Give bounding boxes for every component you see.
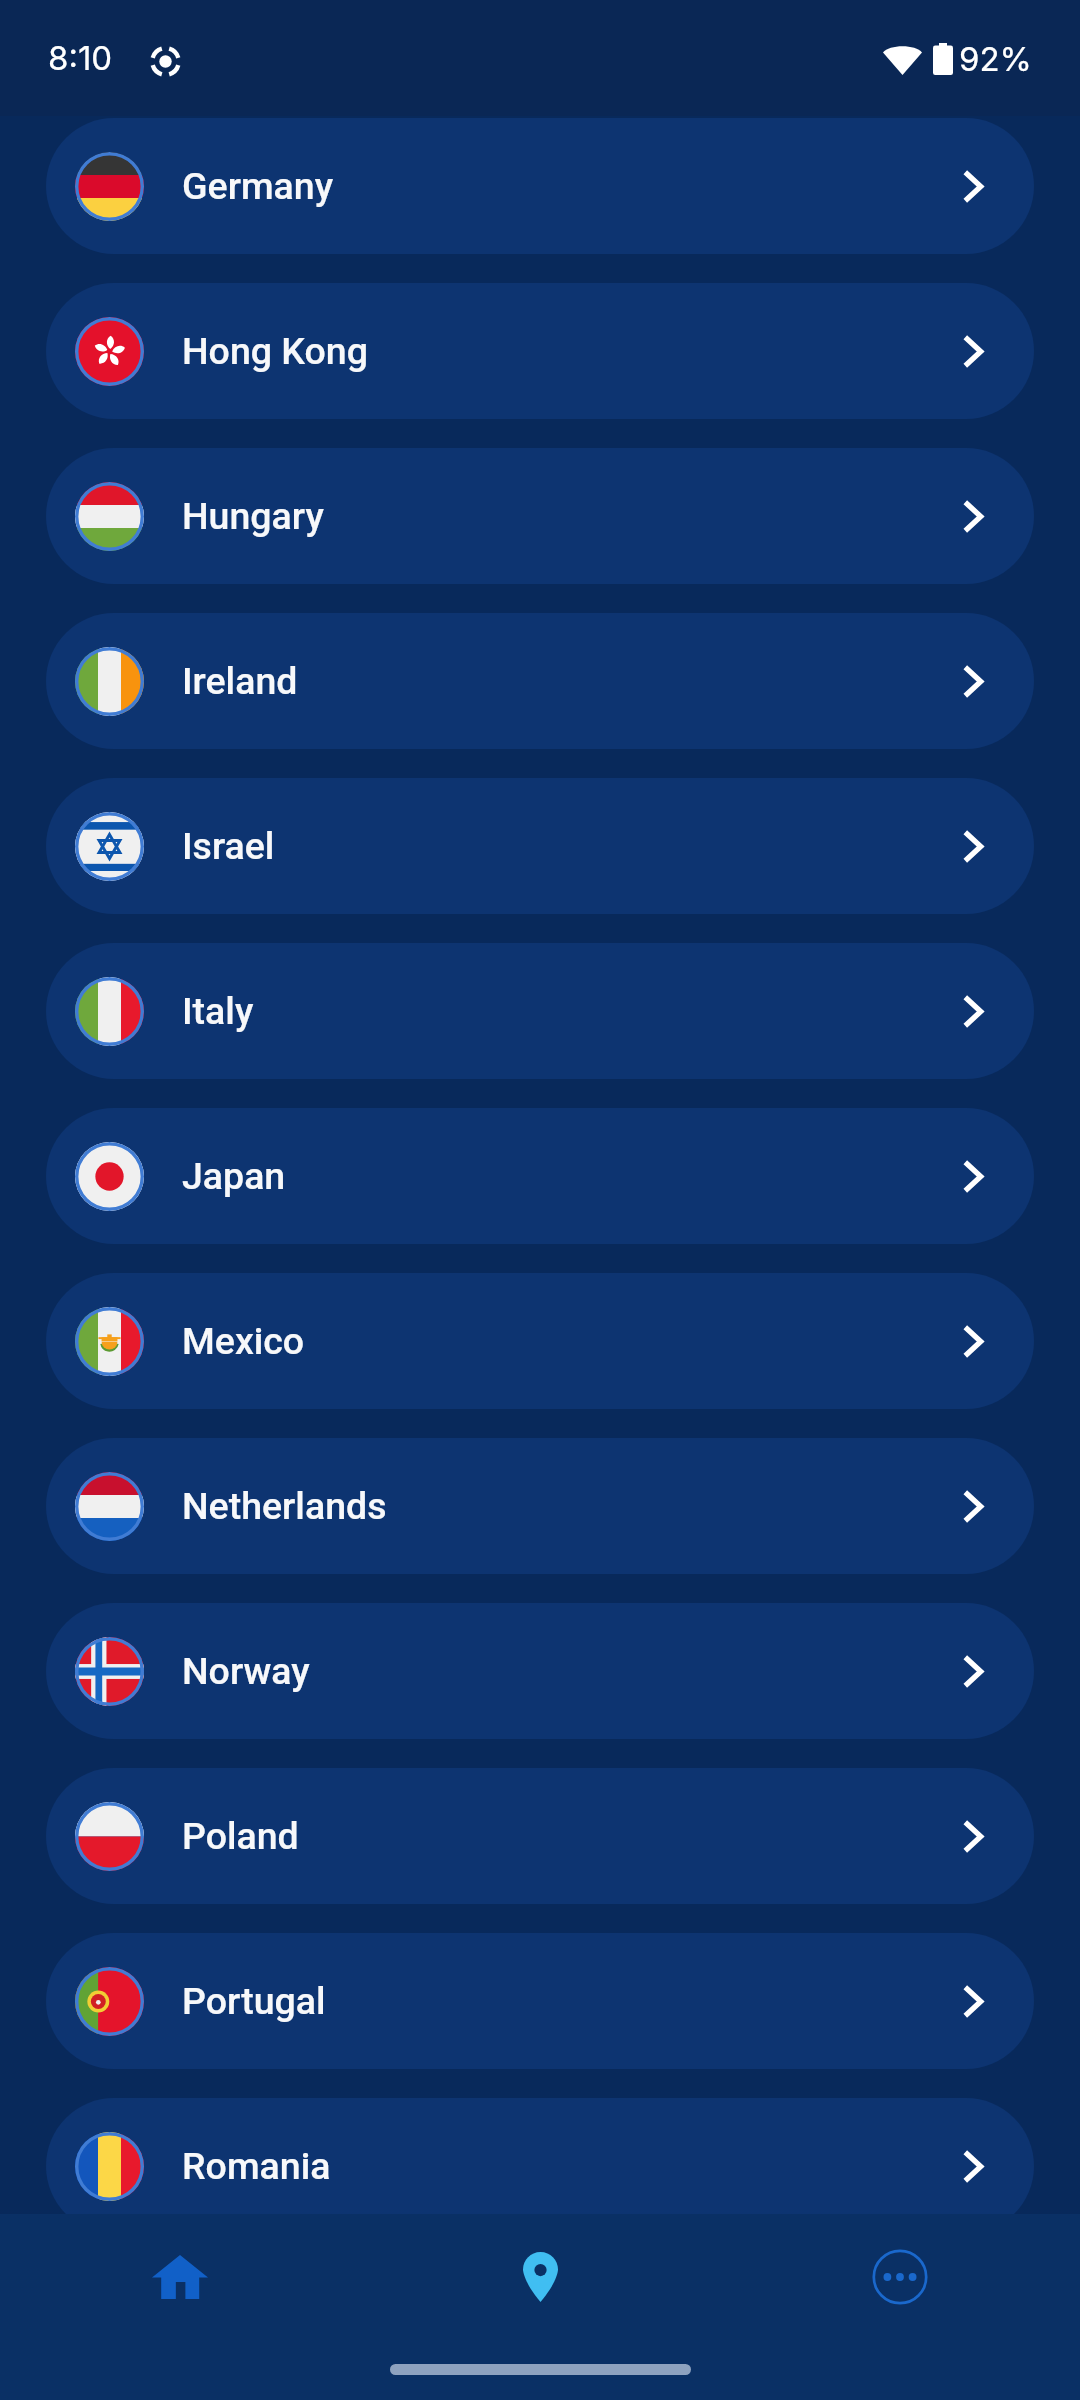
button[interactable]: Romania	[46, 2098, 1034, 2234]
button[interactable]: Netherlands	[46, 1438, 1034, 1574]
staticText: Norway	[182, 1649, 310, 1693]
button[interactable]: Places	[360, 2214, 720, 2340]
button[interactable]: Hong Kong	[46, 283, 1034, 419]
staticText: Netherlands	[182, 1484, 387, 1528]
button[interactable]: Home	[0, 2214, 360, 2340]
button[interactable]: Mexico	[46, 1273, 1034, 1409]
staticText: Portugal	[182, 1979, 326, 2023]
staticText: Italy	[182, 989, 254, 1033]
button[interactable]: Japan	[46, 1108, 1034, 1244]
button[interactable]: Germany	[46, 118, 1034, 254]
staticText: Ireland	[182, 659, 298, 703]
button[interactable]: Hungary	[46, 448, 1034, 584]
staticText: Israel	[182, 824, 275, 868]
button[interactable]: Poland	[46, 1768, 1034, 1904]
staticText: 92%	[959, 39, 1032, 79]
button[interactable]: Israel	[46, 778, 1034, 914]
button[interactable]: Ireland	[46, 613, 1034, 749]
button[interactable]: Portugal	[46, 1933, 1034, 2069]
staticText: Japan	[182, 1154, 286, 1198]
staticText: 8:10	[48, 38, 113, 78]
staticText: Romania	[182, 2144, 331, 2188]
staticText: Poland	[182, 1814, 299, 1858]
button[interactable]: Norway	[46, 1603, 1034, 1739]
staticText: Mexico	[182, 1319, 305, 1363]
staticText: Hungary	[182, 494, 324, 538]
staticText: Germany	[182, 164, 334, 208]
button[interactable]: Italy	[46, 943, 1034, 1079]
button[interactable]: More	[720, 2214, 1080, 2340]
staticText: Hong Kong	[182, 329, 368, 373]
